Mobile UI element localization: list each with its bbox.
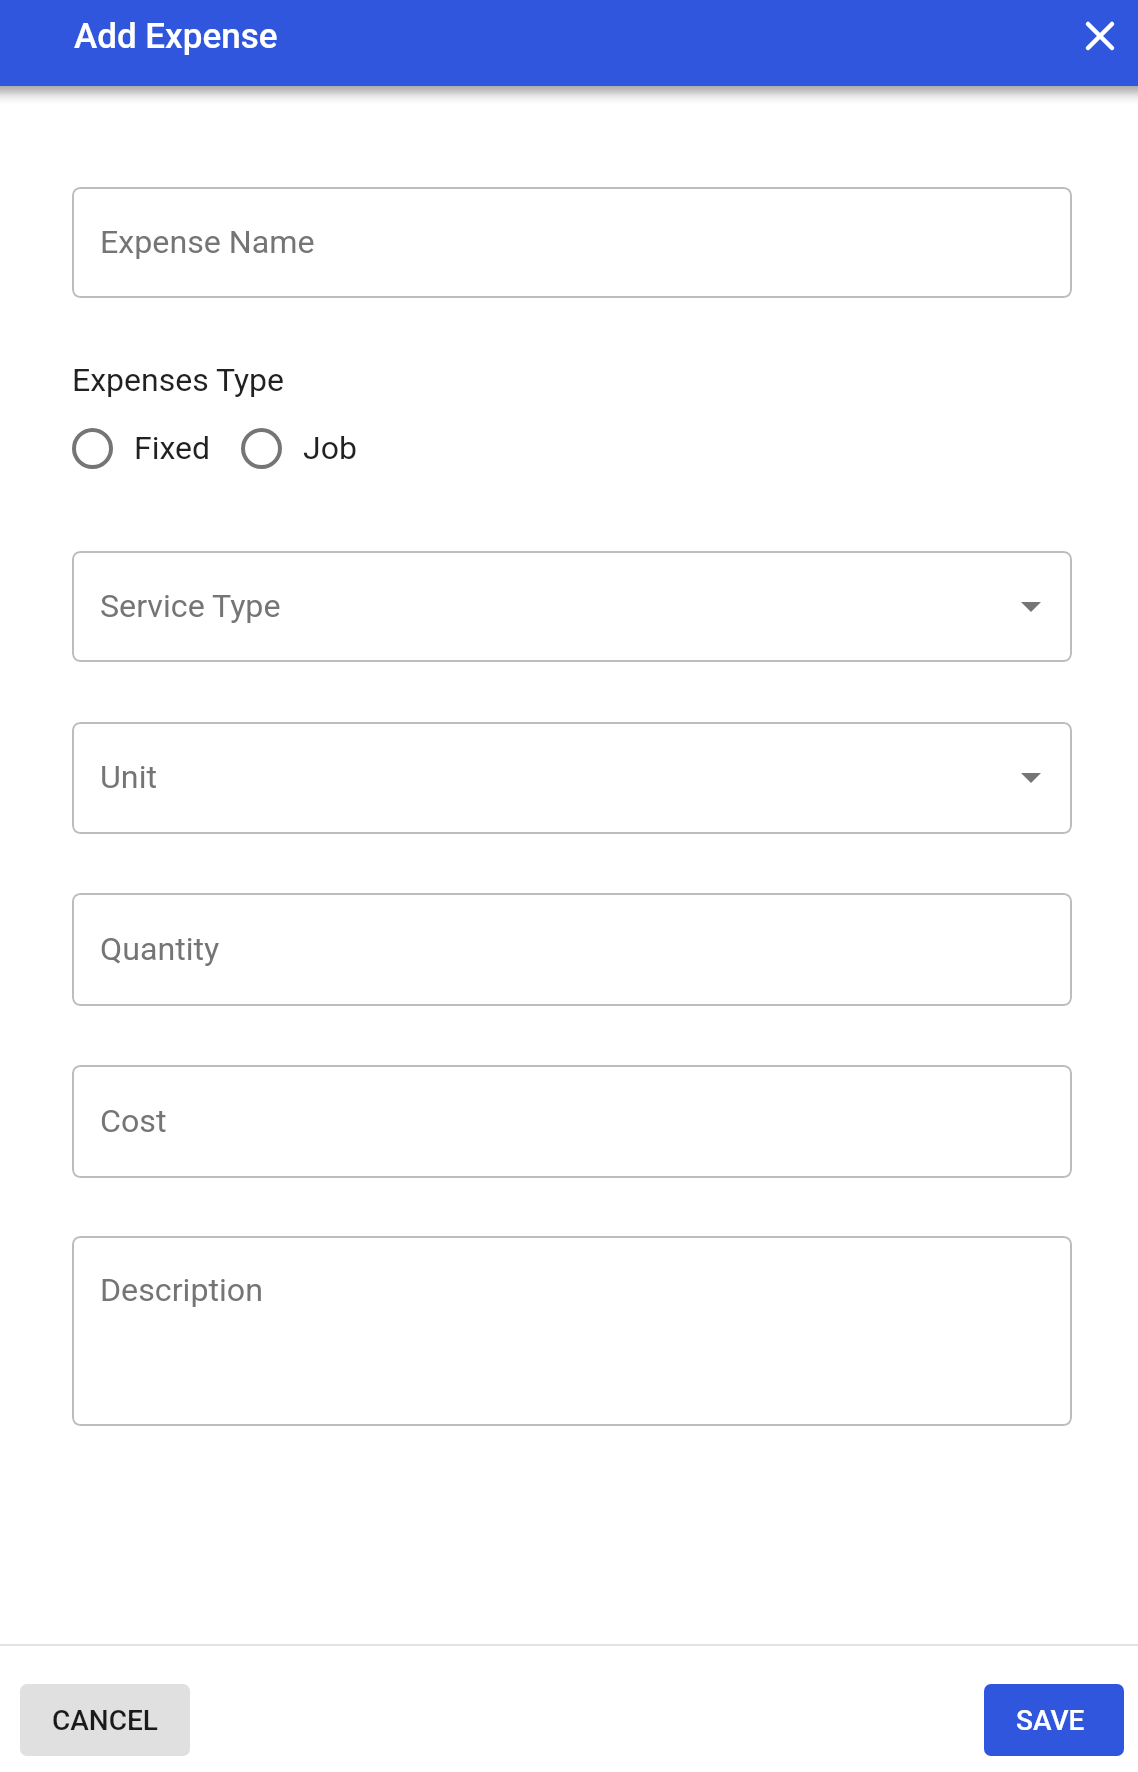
staticText: Expense Name	[100, 223, 315, 261]
button[interactable]: Job	[241, 423, 357, 473]
button[interactable]: Service Type	[72, 551, 1072, 662]
staticText: Fixed	[134, 429, 211, 467]
staticText: Description	[100, 1271, 263, 1309]
staticText: Expenses Type	[72, 361, 285, 399]
staticText: Service Type	[100, 587, 281, 625]
staticText: Unit	[100, 758, 158, 796]
button[interactable]: Fixed	[72, 423, 211, 473]
staticText: Quantity	[100, 930, 220, 968]
button[interactable]: Description	[72, 1236, 1072, 1426]
button[interactable]: CANCEL	[20, 1684, 190, 1756]
staticText: SAVE	[1016, 1704, 1085, 1737]
button[interactable]: SAVE	[984, 1684, 1124, 1756]
staticText: Add Expense	[74, 16, 278, 57]
button[interactable]: Close	[1076, 12, 1124, 60]
staticText: Job	[303, 429, 357, 467]
staticText: CANCEL	[52, 1704, 158, 1737]
staticText: Cost	[100, 1102, 167, 1140]
button[interactable]: Expense Name	[72, 187, 1072, 298]
button[interactable]: Cost	[72, 1065, 1072, 1178]
button[interactable]: Unit	[72, 722, 1072, 834]
button[interactable]: Quantity	[72, 893, 1072, 1006]
